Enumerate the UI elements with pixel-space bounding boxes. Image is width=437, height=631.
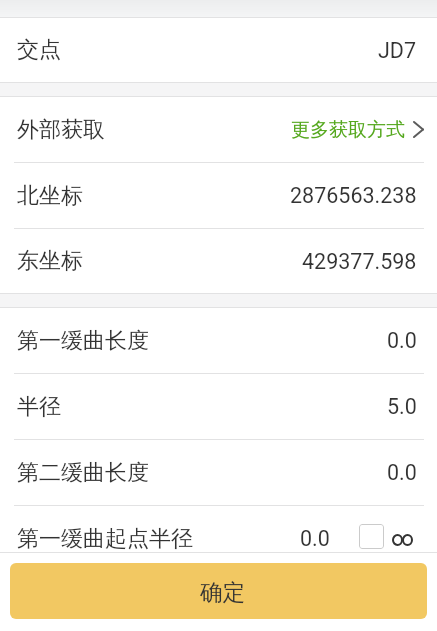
staticText: 第一缓曲长度 [17,327,149,355]
button[interactable]: 第一缓曲长度 [0,308,437,373]
button[interactable]: 东坐标 [0,229,437,293]
staticText: 第二缓曲长度 [17,459,149,487]
staticText: 5.0 [387,394,417,419]
staticText: 半径 [17,393,61,421]
button[interactable]: 北坐标 [0,163,437,228]
staticText: 东坐标 [17,247,83,275]
button[interactable]: 交点 [0,18,437,82]
button[interactable]: 第二缓曲长度 [0,440,437,505]
button[interactable]: 确定 [10,563,427,619]
staticText: 0.0 [387,460,417,485]
button[interactable]: 无穷大 [359,524,384,549]
staticText: 0.0 [300,526,330,551]
staticText: 北坐标 [17,182,83,210]
staticText: 0.0 [387,328,417,353]
staticText: 确定 [200,578,245,606]
staticText: 429377.598 [302,249,417,274]
staticText: 更多获取方式 [291,118,405,142]
staticText: 外部获取 [17,116,105,144]
staticText: 第一缓曲起点半径 [17,525,193,553]
button[interactable]: 外部获取 [0,97,437,162]
other: 更多获取方式 [413,121,424,138]
button[interactable]: 第一缓曲起点半径 [0,506,437,571]
staticText: 交点 [17,36,61,64]
staticText: JD7 [378,38,417,63]
button[interactable]: 半径 [0,374,437,439]
staticText: 2876563.238 [290,183,417,208]
